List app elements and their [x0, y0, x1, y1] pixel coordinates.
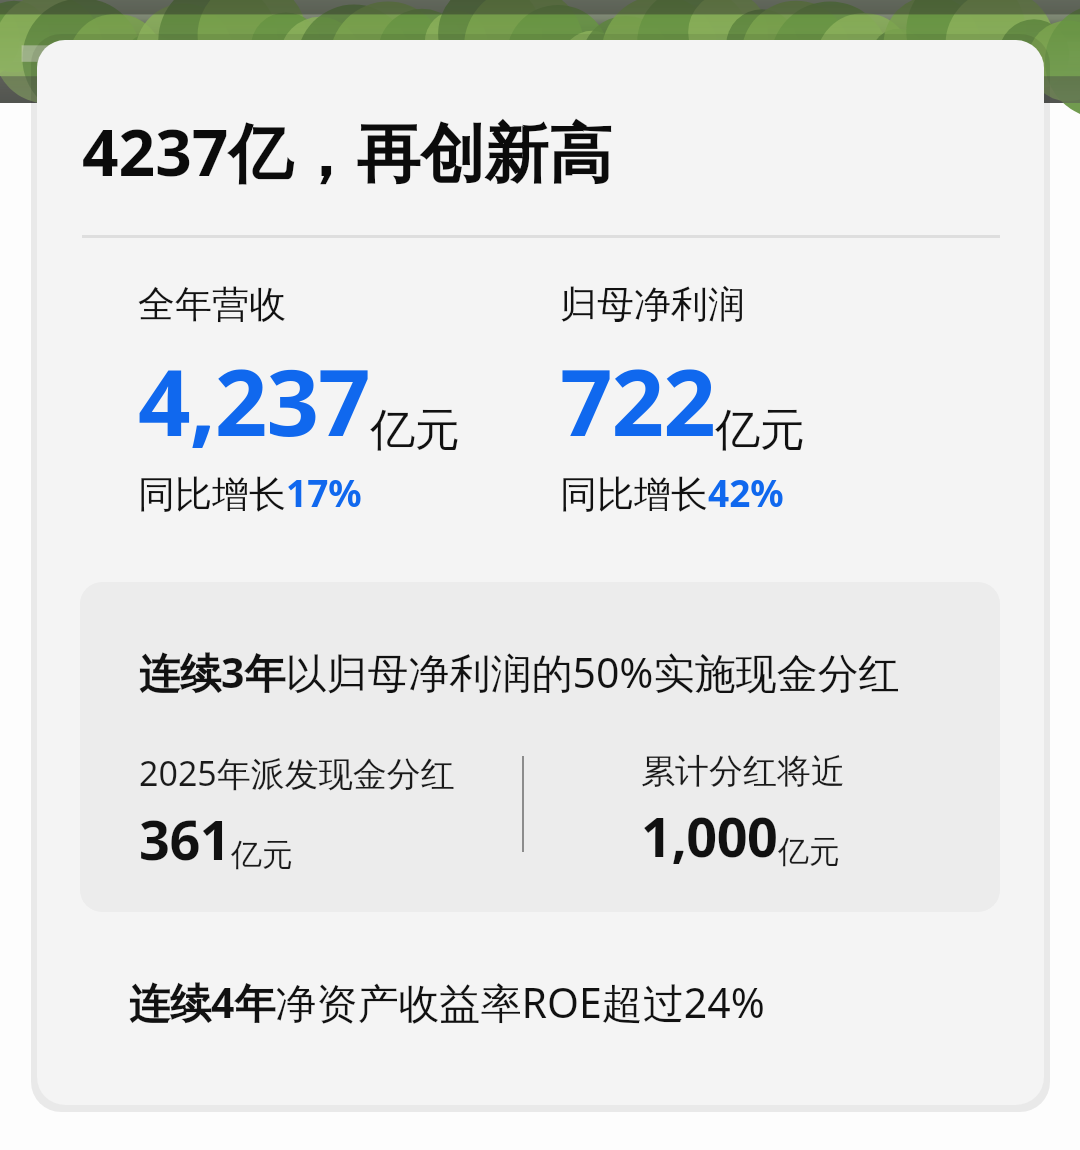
staticText: 722	[560, 338, 715, 463]
button[interactable]: 连续3年以归母净利润的50%实施现金分红	[80, 582, 1000, 912]
staticText: 同比增长17%	[138, 467, 362, 518]
staticText: 累计分红将近	[641, 750, 845, 793]
staticText: 亿元	[715, 402, 805, 459]
staticText: 亿元	[231, 835, 293, 874]
other: Company campus aerial photo	[0, 0, 1080, 40]
staticText: 归母净利润	[560, 281, 745, 328]
staticText: 亿元	[778, 832, 840, 871]
staticText: 全年营收	[138, 281, 286, 328]
button[interactable]: 4237亿，再创新高	[37, 40, 1044, 1105]
staticText: 361	[139, 802, 231, 876]
staticText: 连续3年以归母净利润的50%实施现金分红	[139, 644, 900, 700]
staticText: 4237亿，再创新高	[82, 108, 613, 195]
staticText: 2025年派发现金分红	[139, 750, 455, 796]
staticText: 同比增长42%	[560, 467, 784, 518]
staticText: 连续4年净资产收益率ROE超过24%	[129, 974, 765, 1030]
staticText: 4,237	[138, 338, 370, 463]
staticText: 亿元	[370, 402, 460, 459]
staticText: 1,000	[641, 799, 778, 873]
